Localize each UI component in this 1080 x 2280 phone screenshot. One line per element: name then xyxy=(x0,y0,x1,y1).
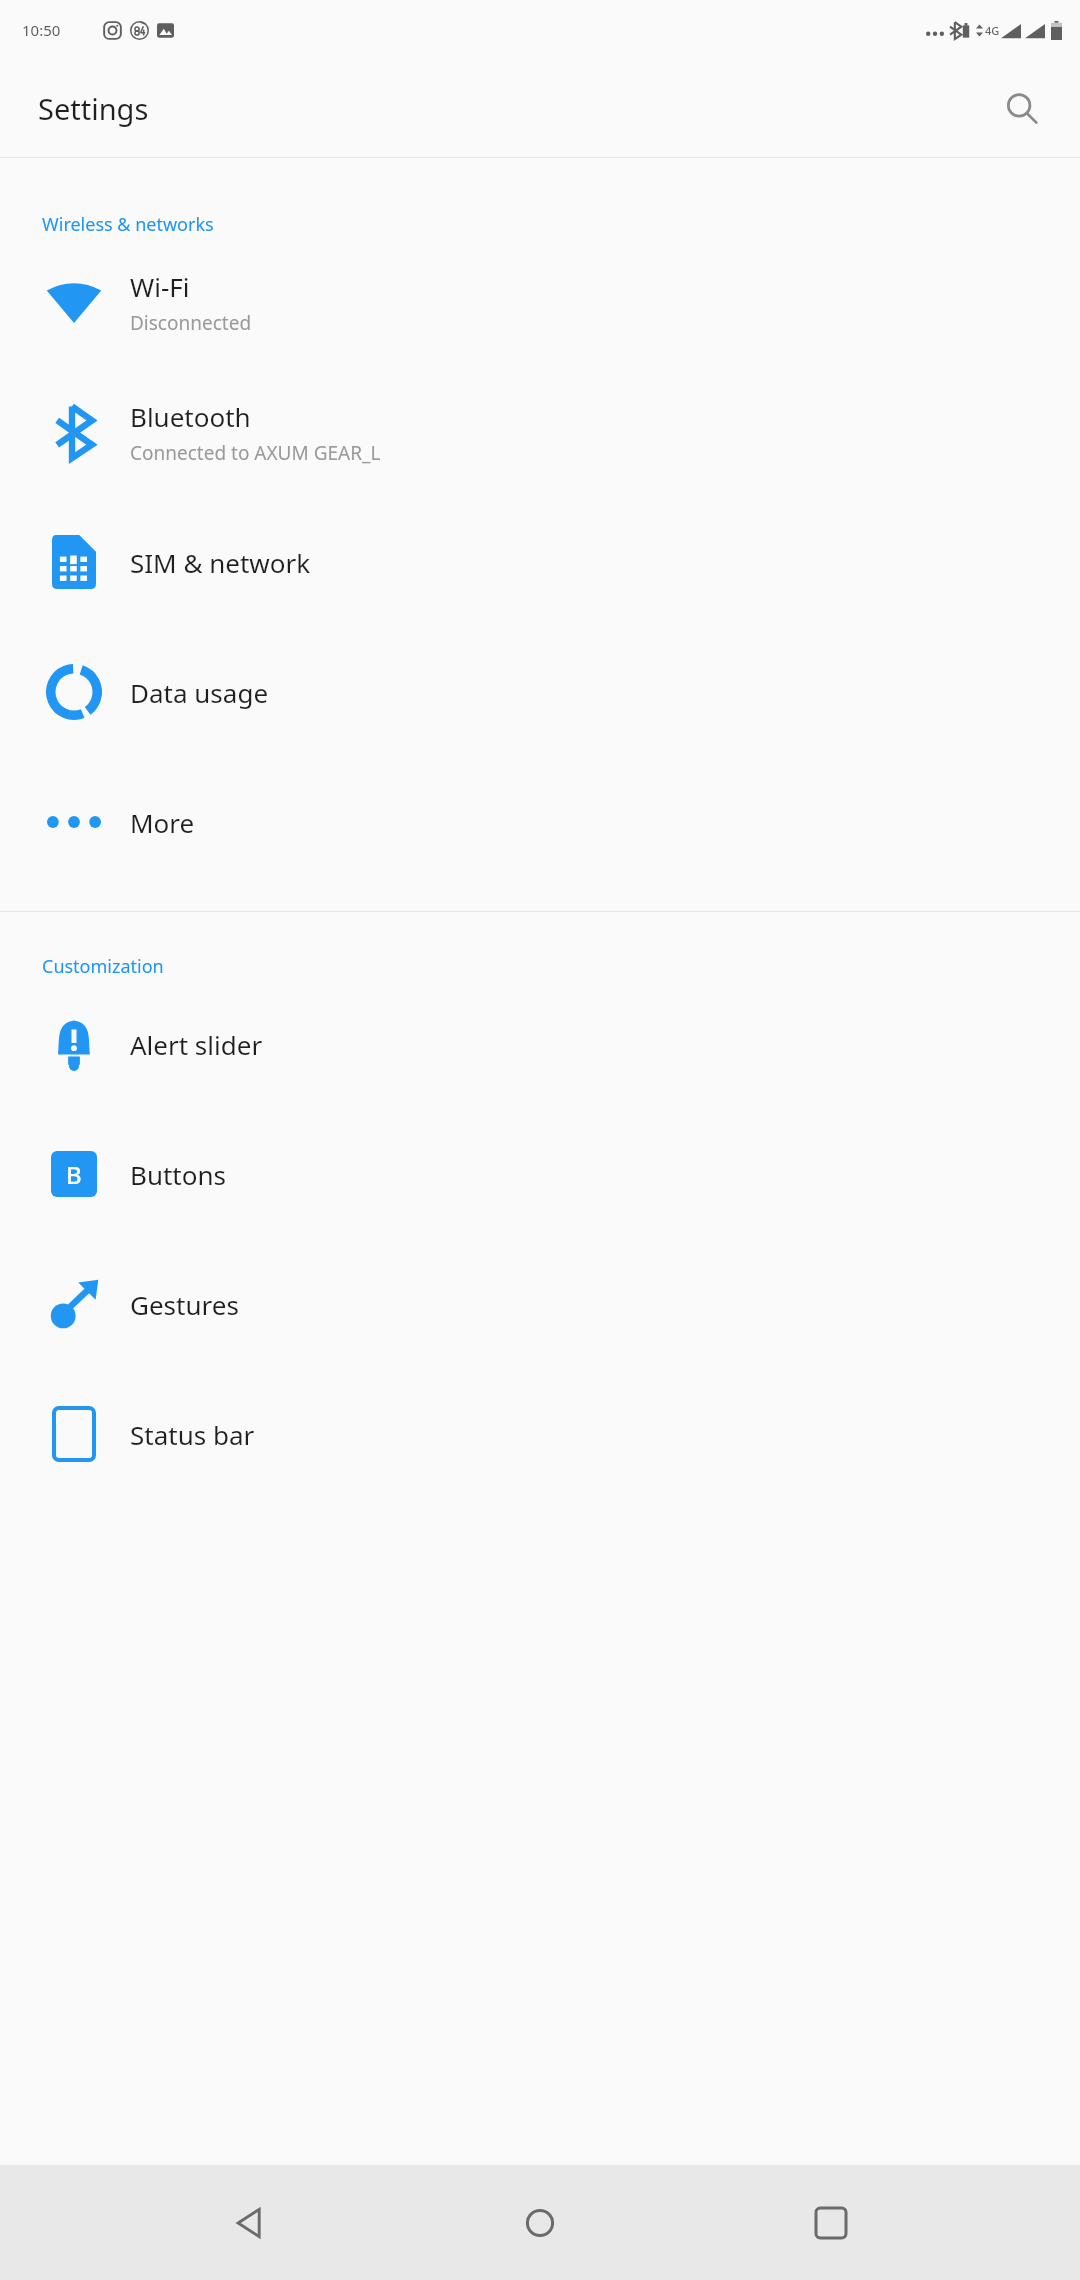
staticText: B xyxy=(66,1158,82,1191)
button[interactable]: B xyxy=(0,1109,1080,1239)
staticText: SIM & network xyxy=(130,545,311,580)
staticText: Gestures xyxy=(130,1287,239,1322)
button[interactable]: Data usage xyxy=(0,627,1080,757)
button[interactable]: Recents xyxy=(789,2181,873,2265)
button[interactable]: Search xyxy=(994,81,1050,137)
staticText: Disconnected xyxy=(130,310,252,336)
staticText: Status bar xyxy=(130,1417,255,1452)
staticText: More xyxy=(130,805,195,840)
staticText: 4G xyxy=(985,23,1000,38)
button[interactable]: Alert slider xyxy=(0,979,1080,1109)
staticText: Settings xyxy=(38,89,149,128)
staticText: Buttons xyxy=(130,1157,226,1192)
button[interactable]: Back xyxy=(207,2181,291,2265)
staticText: Data usage xyxy=(130,675,269,710)
button[interactable]: Bluetooth xyxy=(0,367,1080,497)
staticText: Bluetooth xyxy=(130,399,251,434)
staticText: Wi-Fi xyxy=(130,269,190,304)
staticText: 10:50 xyxy=(22,20,61,40)
staticText: Alert slider xyxy=(130,1027,263,1062)
button[interactable]: Home xyxy=(498,2181,582,2265)
staticText: Customization xyxy=(42,954,164,979)
button[interactable]: Status bar xyxy=(0,1369,1080,1499)
button[interactable]: Gestures xyxy=(0,1239,1080,1369)
staticText: Connected to AXUM GEAR_L xyxy=(130,440,381,466)
staticText: Wireless & networks xyxy=(42,212,214,237)
button[interactable]: More xyxy=(0,757,1080,887)
button[interactable]: SIM & network xyxy=(0,497,1080,627)
button[interactable]: Wi-Fi xyxy=(0,237,1080,367)
